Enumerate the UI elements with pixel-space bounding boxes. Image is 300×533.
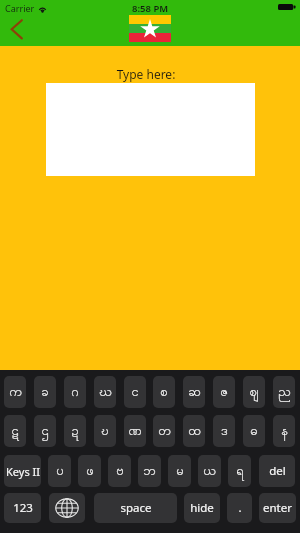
button[interactable]: ဘ xyxy=(138,455,161,487)
button[interactable]: ထ xyxy=(183,415,205,447)
button[interactable]: ဓ xyxy=(243,415,265,447)
button[interactable]: တ xyxy=(153,415,175,447)
staticText: hide xyxy=(190,500,214,516)
button[interactable]: ဏ xyxy=(124,415,146,447)
staticText: ည xyxy=(278,383,291,402)
button[interactable]: ရ xyxy=(228,455,251,487)
staticText: ဍ xyxy=(71,422,79,441)
button[interactable]: ဗ xyxy=(108,455,131,487)
staticText: ယ xyxy=(203,462,216,481)
staticText: ဏ xyxy=(128,422,142,441)
staticText: ဘ xyxy=(143,462,156,481)
button[interactable]: . xyxy=(227,493,252,523)
staticText: ဗ xyxy=(116,462,124,481)
button[interactable]: ဇ xyxy=(213,376,235,408)
staticText: ဆ xyxy=(188,383,201,402)
staticText: . xyxy=(238,500,242,516)
button[interactable]: ဈ xyxy=(243,376,265,408)
button[interactable]: ဍ xyxy=(64,415,86,447)
staticText: space xyxy=(120,500,152,516)
button[interactable]: ဒ xyxy=(213,415,235,447)
button[interactable]: del xyxy=(259,455,295,487)
staticText: ဋ xyxy=(11,422,19,441)
button[interactable]: ဖ xyxy=(78,455,101,487)
staticText: န xyxy=(281,422,288,441)
button[interactable]: ဎ xyxy=(94,415,116,447)
button[interactable]: ပ xyxy=(48,455,71,487)
staticText: ပ xyxy=(56,462,64,481)
button[interactable]: ဃ xyxy=(94,376,116,408)
button[interactable]: ဂ xyxy=(64,376,86,408)
staticText: မ xyxy=(176,462,184,481)
button[interactable]: enter xyxy=(259,493,296,523)
button[interactable]: ဌ xyxy=(34,415,56,447)
button[interactable]: က xyxy=(4,376,26,408)
button[interactable]: Back xyxy=(4,16,30,42)
staticText: စ xyxy=(160,383,168,402)
staticText: Keys II xyxy=(6,464,40,479)
button[interactable]: ယ xyxy=(198,455,221,487)
staticText: က xyxy=(9,383,22,402)
staticText: ဂ xyxy=(71,383,79,402)
button[interactable]: hide xyxy=(184,493,220,523)
button[interactable]: space xyxy=(94,493,177,523)
button[interactable]: ခ xyxy=(34,376,56,408)
button[interactable]: စ xyxy=(153,376,175,408)
button[interactable]: န xyxy=(273,415,295,447)
staticText: တ xyxy=(158,422,171,441)
staticText: Carrier xyxy=(5,2,35,14)
staticText: ဈ xyxy=(249,383,259,402)
staticText: ဎ xyxy=(101,422,109,441)
staticText: 123 xyxy=(13,500,33,516)
staticText: enter xyxy=(263,500,292,516)
staticText: ရ xyxy=(236,462,244,481)
button[interactable]: င xyxy=(124,376,146,408)
button[interactable]: 123 xyxy=(4,493,41,523)
staticText: ဃ xyxy=(99,383,112,402)
button[interactable]: ဋ xyxy=(4,415,26,447)
staticText: င xyxy=(131,383,139,402)
staticText: ထ xyxy=(188,422,201,441)
staticText: ဖ xyxy=(86,462,94,481)
button[interactable]: ဆ xyxy=(183,376,205,408)
staticText: del xyxy=(269,463,286,479)
staticText: Type here: xyxy=(0,66,296,82)
staticText: ဓ xyxy=(250,422,258,441)
button[interactable]: မ xyxy=(168,455,191,487)
button[interactable]: Keys II xyxy=(4,455,41,487)
button[interactable]: Switch keyboard xyxy=(49,493,85,523)
staticText: ဌ xyxy=(41,422,49,441)
staticText: ဇ xyxy=(220,383,228,402)
staticText: 8:58 PM xyxy=(132,2,169,15)
staticText: ဒ xyxy=(221,422,228,441)
button[interactable]: ည xyxy=(273,376,295,408)
staticText: ခ xyxy=(41,383,49,402)
